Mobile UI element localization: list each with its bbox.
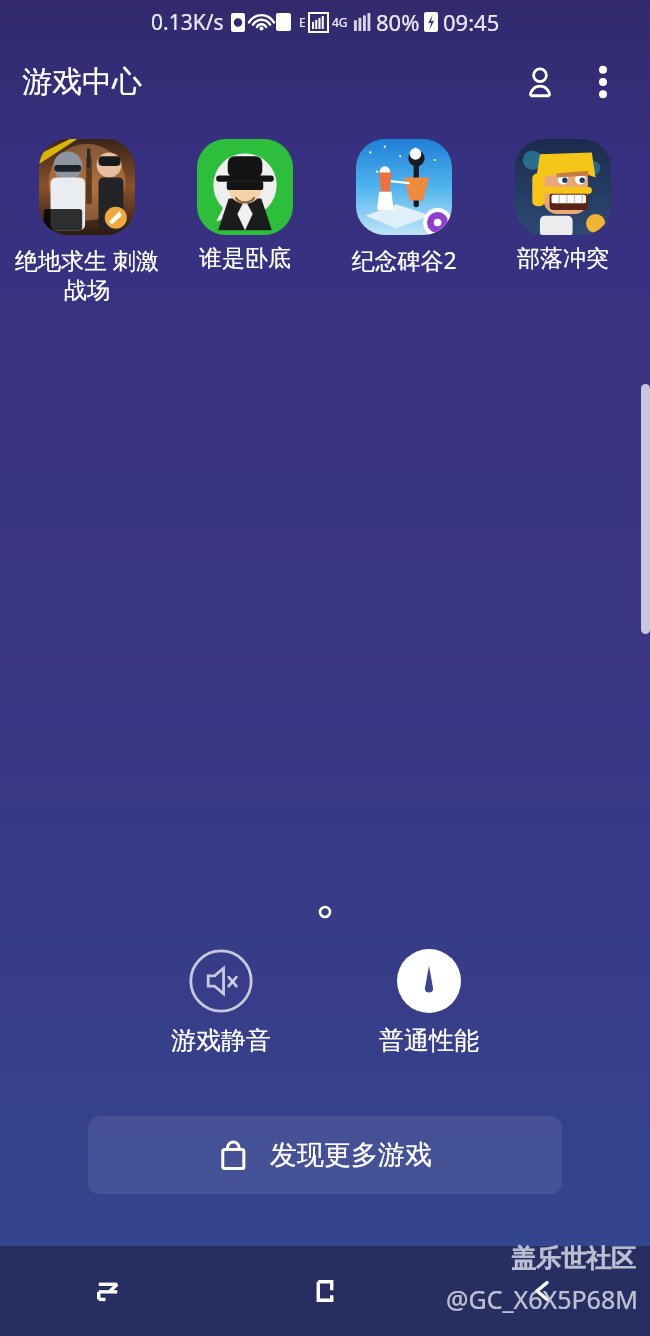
button[interactable]: 纪念碑谷2 <box>324 135 483 279</box>
staticText: 09:45 <box>443 7 500 37</box>
staticText: 游戏中心 <box>22 63 142 101</box>
other: 游戏静音 <box>189 949 253 1013</box>
staticText: 谁是卧底 <box>199 244 291 273</box>
staticText: 绝地求生 刺激 战场 <box>15 244 159 305</box>
staticText: 普通性能 <box>379 1025 479 1056</box>
staticText: E <box>299 14 306 30</box>
staticText: 盖乐世社区 <box>511 1243 636 1274</box>
staticText: 80% <box>376 7 420 37</box>
button[interactable]: Account <box>512 54 568 110</box>
staticText: 纪念碑谷2 <box>351 244 457 275</box>
button[interactable]: Recents <box>0 1246 216 1336</box>
staticText: 0.13K/s <box>151 8 224 37</box>
button[interactable]: Back <box>433 1246 650 1336</box>
button[interactable]: 普通性能 <box>371 945 487 1060</box>
staticText: @GC_X6X5P68M <box>446 1282 638 1316</box>
button[interactable]: 谁是卧底 <box>166 135 324 277</box>
staticText: 部落冲突 <box>517 244 609 273</box>
button[interactable]: Home <box>216 1246 433 1336</box>
staticText: 游戏静音 <box>171 1025 271 1056</box>
other: 普通性能 <box>397 949 461 1013</box>
button[interactable]: More options <box>578 57 628 107</box>
staticText: 发现更多游戏 <box>270 1138 432 1172</box>
button[interactable]: 发现更多游戏 <box>88 1116 562 1194</box>
staticText: 4G <box>332 14 348 30</box>
button[interactable]: 绝地求生 刺激 战场 <box>8 135 166 309</box>
button[interactable]: 游戏静音 <box>163 945 279 1060</box>
button[interactable]: 部落冲突 <box>483 135 642 277</box>
